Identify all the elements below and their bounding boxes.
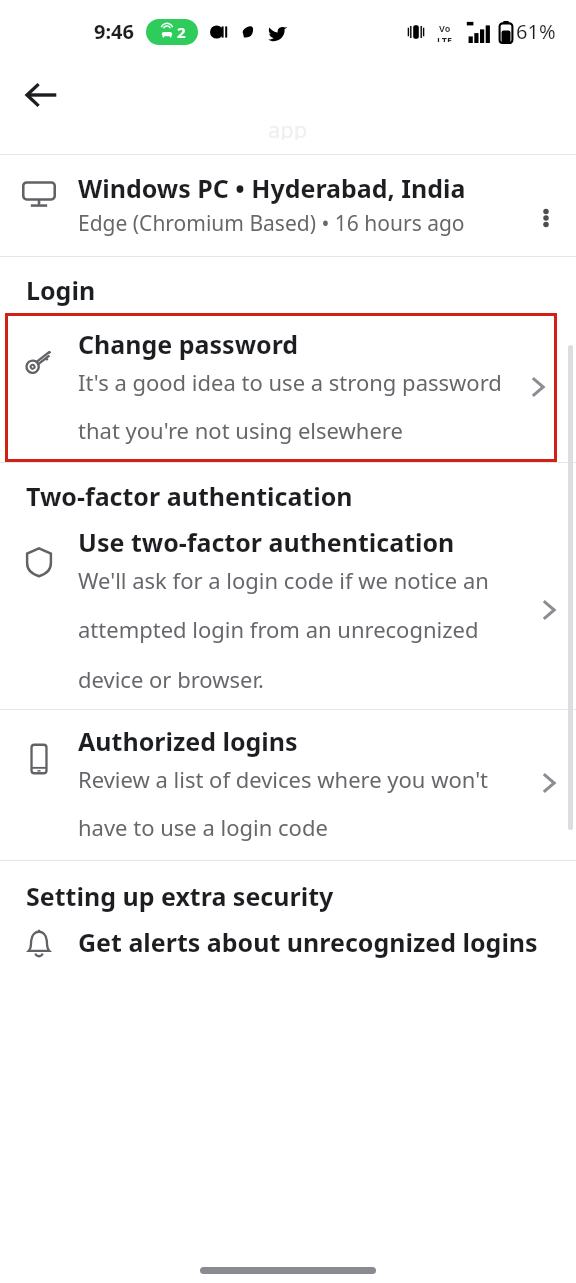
staticText: Windows PC • Hyderabad, India: [78, 171, 466, 205]
button[interactable]: Use two-factor authentication: [0, 517, 576, 709]
staticText: Use two-factor authentication: [78, 525, 455, 559]
staticText: Get alerts about unrecognized logins: [78, 925, 538, 959]
staticText: It's a good idea to use a strong passwor…: [78, 367, 519, 446]
staticText: app: [268, 114, 308, 140]
staticText: 9:46: [94, 18, 134, 45]
button[interactable]: Get alerts about unrecognized logins: [0, 919, 576, 969]
staticText: Authorized logins: [78, 724, 298, 758]
button[interactable]: Authorized logins: [0, 710, 576, 860]
staticText: 61%: [516, 18, 556, 45]
button[interactable]: Change password: [5, 313, 557, 462]
button[interactable]: More options: [526, 193, 566, 243]
staticText: Two-factor authentication: [26, 479, 353, 513]
staticText: Vo: [439, 22, 451, 34]
staticText: Login: [26, 273, 96, 307]
staticText: Change password: [78, 327, 299, 361]
staticText: Edge (Chromium Based) • 16 hours ago: [78, 209, 465, 238]
staticText: Review a list of devices where you won't…: [78, 764, 528, 842]
staticText: We'll ask for a login code if we notice …: [78, 565, 528, 695]
staticText: Setting up extra security: [26, 879, 334, 913]
staticText: 2: [177, 22, 186, 42]
staticText: LTE: [437, 34, 453, 42]
button[interactable]: Windows PC • Hyderabad, India: [0, 155, 576, 256]
button[interactable]: Back: [12, 65, 72, 125]
